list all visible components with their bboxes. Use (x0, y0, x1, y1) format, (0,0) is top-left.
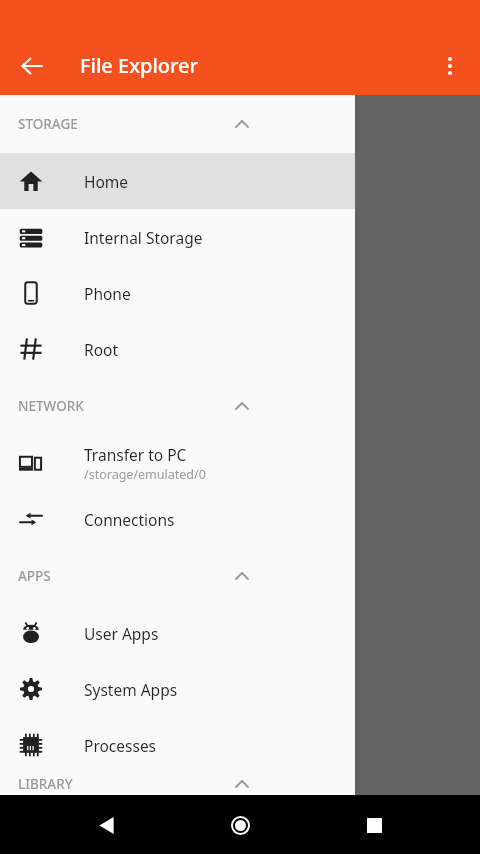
staticText: Phone (84, 283, 131, 304)
staticText: Processes (84, 735, 157, 756)
staticText: Connections (84, 509, 175, 530)
staticText: Internal Storage (84, 227, 203, 248)
button[interactable] (8, 392, 472, 597)
button[interactable]: APPS (0, 547, 355, 605)
button[interactable]: Home (212, 797, 268, 853)
staticText: Home (84, 171, 129, 192)
staticText: APPS (18, 567, 51, 585)
button[interactable]: Shortcut (305, 276, 367, 338)
button[interactable]: Back (8, 42, 56, 90)
staticText: User Apps (84, 623, 159, 644)
button[interactable]: Shortcut (114, 276, 176, 338)
staticText: System Apps (84, 679, 178, 700)
button[interactable]: LIBRARY (0, 773, 355, 795)
button[interactable]: STORAGE (0, 95, 355, 153)
button[interactable]: System Apps (0, 661, 355, 717)
staticText: File Explorer (80, 52, 199, 79)
staticText: Storage (26, 121, 78, 140)
button[interactable]: User Apps (0, 605, 355, 661)
staticText: Root (84, 339, 118, 360)
staticText: 38% (26, 146, 52, 164)
staticText: LIBRARY (18, 775, 73, 793)
staticText: NETWORK (18, 397, 84, 415)
staticText: Transfer to PC (84, 444, 187, 465)
button[interactable]: Back (78, 797, 134, 853)
button[interactable]: Root (0, 321, 355, 377)
button[interactable]: Storage (10, 105, 470, 180)
button[interactable]: More options (426, 42, 474, 90)
staticText: STORAGE (18, 115, 78, 133)
button[interactable]: Transfer to PC (0, 435, 355, 491)
button[interactable]: Connections (0, 491, 355, 547)
button[interactable]: Processes (0, 717, 355, 773)
staticText: /storage/emulated/0 (84, 466, 206, 483)
button[interactable]: Internal Storage (0, 209, 355, 265)
button[interactable]: Shortcut (18, 276, 80, 338)
button[interactable]: NETWORK (0, 377, 355, 435)
button[interactable]: Cleaner (10, 188, 470, 258)
button[interactable]: Recent apps (346, 797, 402, 853)
button[interactable]: Phone (0, 265, 355, 321)
button[interactable]: Home (0, 153, 355, 209)
